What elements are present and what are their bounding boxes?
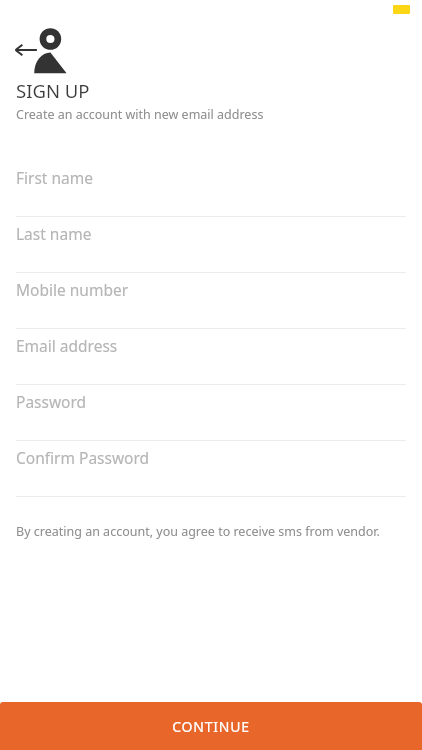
button[interactable]: Mobile number [0,273,422,329]
button[interactable]: Back [10,34,42,66]
staticText: Create an account with new email address [16,106,264,123]
button[interactable]: Email address [0,329,422,385]
staticText: SIGN UP [16,78,90,103]
button[interactable]: CONTINUE [0,702,422,750]
button[interactable]: First name [0,161,422,217]
button[interactable]: Confirm Password [0,441,422,497]
staticText: Password [16,391,87,412]
staticText: Email address [16,335,118,356]
staticText: Last name [16,223,92,244]
staticText: First name [16,167,94,188]
staticText: Confirm Password [16,447,150,468]
staticText: By creating an account, you agree to rec… [16,523,380,540]
button[interactable]: Last name [0,217,422,273]
button[interactable]: Password [0,385,422,441]
staticText: Mobile number [16,279,129,300]
staticText: CONTINUE [172,717,250,736]
